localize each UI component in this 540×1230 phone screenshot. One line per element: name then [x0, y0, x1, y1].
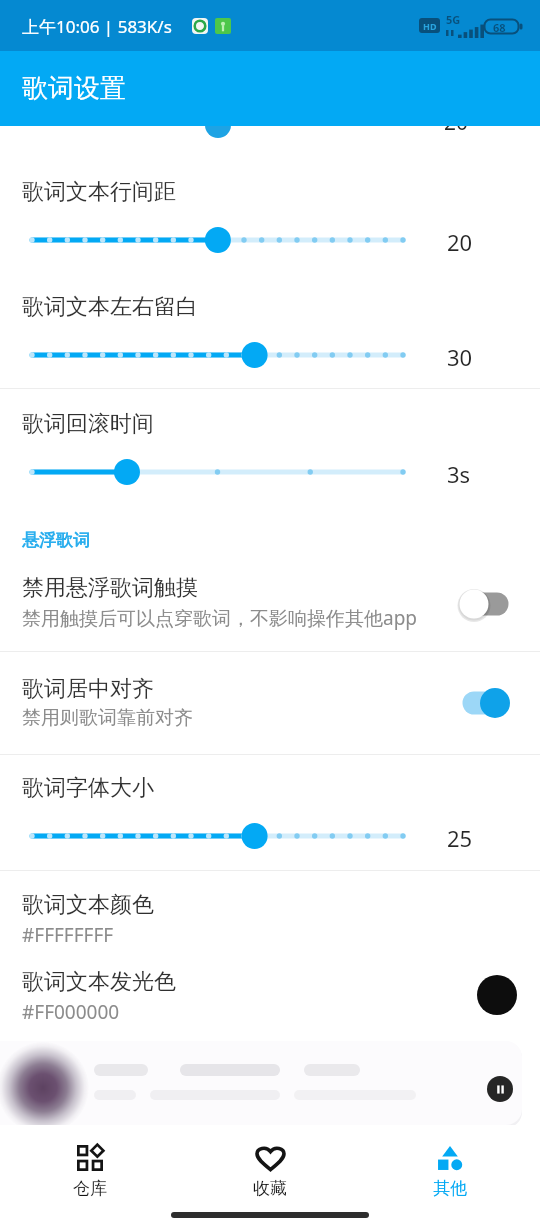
button[interactable]	[0, 556, 540, 632]
staticText: #FF000000	[22, 999, 120, 1025]
staticText: 悬浮歌词	[22, 530, 90, 551]
staticText: 歌词居中对齐	[22, 675, 154, 703]
staticText: 歌词文本颜色	[22, 891, 154, 919]
staticText: 歌词回滚时间	[22, 410, 154, 438]
staticText: 歌词文本发光色	[22, 968, 176, 996]
staticText: 仓库	[73, 1178, 107, 1199]
staticText: 20	[447, 227, 473, 257]
button[interactable]: Toggle off	[452, 582, 518, 626]
staticText: 3s	[447, 459, 471, 489]
staticText: 5G	[446, 12, 461, 27]
button[interactable]	[0, 657, 540, 733]
staticText: 歌词文本行间距	[22, 178, 176, 206]
staticText: 30	[447, 342, 473, 372]
staticText: 歌词设置	[22, 72, 126, 105]
staticText: 禁用悬浮歌词触摸	[22, 574, 198, 602]
staticText: 其他	[433, 1178, 467, 1199]
staticText: 歌词设置	[22, 72, 126, 105]
staticText: 歌词文本左右留白	[22, 293, 198, 321]
staticText: 收藏	[253, 1178, 287, 1199]
staticText: 25	[447, 823, 473, 853]
staticText: 20	[444, 108, 469, 137]
button[interactable]: Slider	[0, 814, 540, 858]
staticText: 上午10:06 | 583K/s	[22, 15, 172, 38]
staticText: 歌词字体大小	[22, 774, 154, 802]
button[interactable]: Slider	[0, 450, 540, 494]
button[interactable]	[0, 1041, 522, 1125]
staticText: 禁用则歌词靠前对齐	[22, 706, 193, 730]
button[interactable]: Toggle on	[452, 681, 518, 725]
staticText: HD	[423, 20, 437, 32]
button[interactable]: Pause	[487, 1076, 513, 1102]
button[interactable]: Pick glow colour	[477, 975, 517, 1015]
button[interactable]: 仓库	[45, 1135, 135, 1207]
staticText: 68	[493, 20, 506, 35]
button[interactable]: 其他	[405, 1135, 495, 1207]
button[interactable]: 收藏	[225, 1135, 315, 1207]
button[interactable]: Slider	[0, 218, 540, 262]
staticText: 禁用触摸后可以点穿歌词，不影响操作其他app	[22, 605, 418, 631]
staticText: #FFFFFFFF	[22, 922, 114, 948]
button[interactable]: Slider	[0, 333, 540, 377]
